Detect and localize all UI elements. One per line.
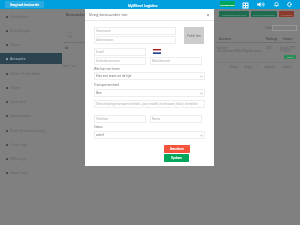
button[interactable]: Omschrijving transporteenheid - jaar, mo…	[94, 100, 205, 108]
button[interactable]: Nieuwe taak	[220, 1, 235, 7]
staticText: Voornaam	[96, 29, 111, 33]
staticText: Email Logs	[10, 170, 29, 175]
staticText: Driver Truck Bank	[10, 71, 40, 76]
button[interactable]: Profiel foto	[184, 27, 204, 44]
button[interactable]: Achternaam	[94, 36, 176, 44]
button[interactable]: Instellingen	[0, 25, 62, 36]
staticText: Wachtwoord	[152, 59, 170, 63]
button[interactable]: Driver Truck Bank	[0, 68, 62, 79]
button[interactable]: Voeg taak bestuurder	[5, 1, 44, 8]
staticText: actief	[96, 133, 104, 137]
staticText: Ratings	[266, 37, 278, 41]
button[interactable]: Push Logs	[0, 139, 62, 150]
button[interactable]: Geluid	[257, 2, 264, 7]
staticText: MyWheel Logistics	[128, 3, 158, 8]
staticText: Achternaam	[96, 38, 114, 42]
button[interactable]: Meldingen	[274, 2, 279, 7]
staticText: Nee	[96, 91, 102, 95]
staticText: Push Logs	[10, 142, 28, 147]
button[interactable]: Kies een team uit de lijst	[94, 72, 205, 80]
staticText: Stuur push bericht	[253, 13, 275, 16]
button[interactable]: SMS Logs	[0, 153, 62, 164]
button[interactable]: Sluiten	[206, 13, 210, 17]
button[interactable]: Taken	[0, 82, 62, 93]
staticText: Gebruikersnaam	[96, 59, 120, 63]
button[interactable]: Telefoon	[94, 115, 146, 123]
staticText: Status	[283, 37, 293, 41]
staticText: actief	[287, 56, 293, 59]
button[interactable]: Teams	[0, 39, 62, 50]
staticText: Voeg bestuurder toe	[89, 12, 128, 17]
staticText: Rapportages	[10, 113, 32, 118]
staticText: Laatste	[283, 65, 292, 69]
staticText: Annuleren	[170, 147, 184, 151]
button[interactable]: Nee	[94, 89, 205, 97]
button[interactable]: Email Logs	[0, 167, 62, 178]
button[interactable]: Annuleren	[164, 145, 190, 153]
staticText: infrastructure-PB2m5ZQyCb5.com.nl	[217, 49, 262, 53]
staticText: 11:33:17	[280, 49, 291, 53]
staticText: Transporteenheid	[94, 83, 120, 87]
staticText: Volgende	[264, 65, 276, 69]
staticText: Verwijder	[281, 13, 293, 16]
button[interactable]: Verwijder	[279, 11, 294, 17]
button[interactable]: Stuur push bericht	[251, 11, 277, 17]
staticText: Zoek:	[265, 26, 273, 30]
staticText: Telefoon	[96, 117, 109, 121]
button[interactable]: Gebruikersnaam	[94, 57, 146, 65]
button[interactable]: Opdracht	[0, 96, 62, 107]
button[interactable]	[272, 25, 297, 31]
button[interactable]: actief	[284, 55, 296, 59]
staticText: Wat kan een team	[94, 67, 120, 71]
staticText: 0.00	[266, 46, 272, 50]
staticText: Taken	[10, 85, 20, 90]
button[interactable]: Voornaam	[94, 27, 176, 35]
button[interactable]: Email	[94, 48, 146, 56]
button[interactable]: Voeg bestuurder toe	[219, 11, 249, 17]
staticText: 10	[68, 35, 72, 39]
button[interactable]: Accounts	[0, 53, 62, 64]
staticText: Omschrijving transporteenheid - jaar, mo…	[96, 102, 198, 106]
staticText: Dashboard	[10, 14, 29, 19]
button[interactable]: Apps	[243, 3, 248, 8]
staticText: Kies een team uit de lijst	[96, 74, 132, 78]
staticText: SMS Logs	[10, 156, 27, 161]
staticText: Instellingen	[10, 28, 30, 33]
staticText: Email	[96, 50, 104, 54]
staticText: Accounts	[10, 56, 26, 61]
button[interactable]: Wachtwoord	[150, 57, 202, 65]
staticText: Toon 1 tot 1	[63, 64, 78, 68]
button[interactable]: Vernieuwen	[287, 2, 292, 7]
staticText: Profiel foto	[187, 34, 201, 38]
staticText: Teams	[10, 42, 21, 47]
staticText: Opdracht	[10, 99, 26, 104]
button[interactable]: actief	[94, 131, 205, 139]
staticText: Nieuwe taak	[220, 3, 235, 6]
button[interactable]: Notes	[150, 115, 202, 123]
button[interactable]: Dashboard	[0, 11, 62, 22]
staticText: Ac	[65, 46, 69, 50]
button[interactable]: Push Broadcast Logs	[0, 125, 62, 136]
staticText: sep 24, 2019	[280, 46, 296, 50]
staticText: Opslaan	[171, 156, 182, 160]
button[interactable]: Opslaan	[164, 154, 189, 162]
staticText: Notes	[152, 117, 161, 121]
staticText: Voeg bestuurder toe	[222, 13, 247, 16]
staticText: Vorige	[244, 65, 252, 69]
staticText: Status	[94, 125, 103, 129]
staticText: Eerste	[230, 65, 238, 69]
button[interactable]: Rapportages	[0, 110, 62, 121]
staticText: bestchef	[217, 46, 228, 50]
staticText: Push Broadcast Logs	[10, 128, 46, 133]
staticText: Bestuurder	[66, 12, 85, 17]
staticText: 1	[257, 65, 259, 69]
staticText: Account	[219, 37, 232, 41]
staticText: Voeg taak bestuurder	[10, 3, 40, 7]
